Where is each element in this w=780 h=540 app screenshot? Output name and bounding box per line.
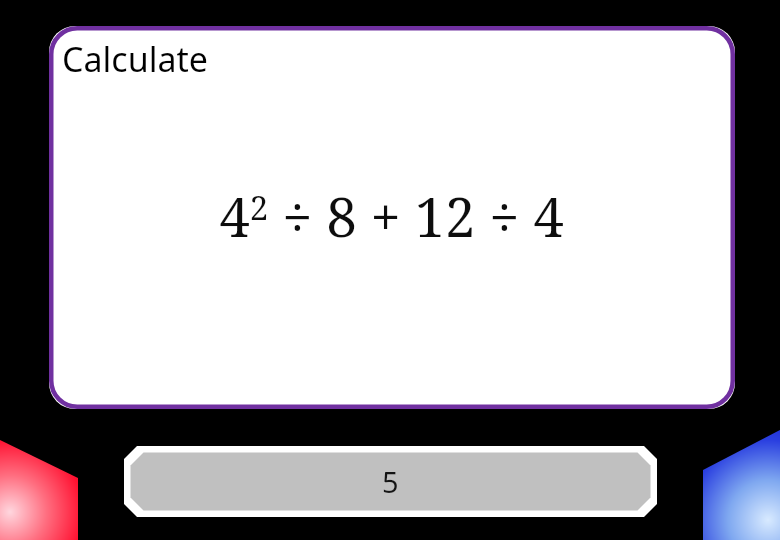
button[interactable]: Answer 5 <box>0 0 780 540</box>
button[interactable] <box>0 0 780 540</box>
